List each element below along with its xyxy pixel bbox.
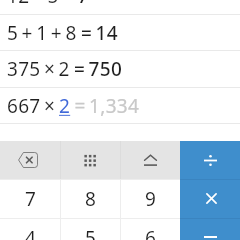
button[interactable]: Multiply — [180, 179, 240, 218]
button[interactable]: Collapse keypad — [120, 141, 180, 179]
button[interactable]: 6 — [120, 218, 180, 240]
button[interactable]: 7 — [0, 179, 60, 218]
staticText: = 14 — [81, 20, 118, 46]
staticText: = 1,334 — [71, 93, 140, 119]
button[interactable]: 9 — [120, 179, 180, 218]
staticText: = 7 — [63, 0, 89, 9]
staticText: 5 — [85, 225, 96, 240]
staticText: 4 — [25, 225, 36, 240]
staticText: 9 — [145, 186, 156, 212]
staticText: 667 × — [7, 93, 59, 119]
staticText: 5 + 1 + 8 — [7, 20, 81, 46]
button[interactable]: 4 — [0, 218, 60, 240]
button[interactable]: Divide — [180, 141, 240, 179]
button[interactable]: 5 — [60, 218, 120, 240]
staticText: 12 − 5 — [7, 0, 63, 9]
button[interactable]: Backspace — [0, 141, 60, 179]
staticText: 6 — [145, 225, 156, 240]
button[interactable]: Switch keypad — [60, 141, 120, 179]
staticText: 8 — [85, 186, 96, 212]
staticText: 375 × 2 — [7, 56, 74, 82]
staticText: 7 — [25, 186, 36, 212]
button[interactable]: Minus — [180, 218, 240, 240]
button[interactable]: 8 — [60, 179, 120, 218]
staticText: = 750 — [74, 56, 123, 82]
staticText: 2 — [59, 93, 71, 119]
